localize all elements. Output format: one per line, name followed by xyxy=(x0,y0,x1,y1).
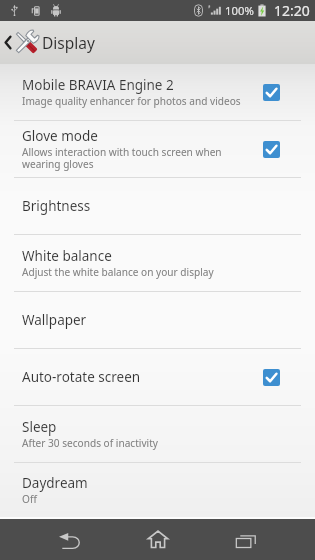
staticText: After 30 seconds of inactivity xyxy=(22,436,158,450)
staticText: Allows interaction with touch screen whe… xyxy=(22,145,247,171)
button[interactable]: Toggle Mobile BRAVIA Engine 2 xyxy=(263,84,280,101)
staticText: Brightness xyxy=(22,197,91,215)
staticText: Image quality enhancer for photos and vi… xyxy=(22,94,241,108)
staticText: Mobile BRAVIA Engine 2 xyxy=(22,76,174,94)
staticText: Wallpaper xyxy=(22,311,87,329)
button[interactable]: Sleep xyxy=(0,406,315,462)
button[interactable]: Mobile BRAVIA Engine 2 xyxy=(0,64,315,120)
staticText: 100% xyxy=(225,3,254,18)
staticText: Adjust the white balance on your display xyxy=(22,265,214,279)
staticText: Daydream xyxy=(22,474,88,492)
button[interactable]: Glove mode xyxy=(0,121,315,177)
button[interactable]: Daydream xyxy=(0,463,315,517)
button[interactable]: Recent apps xyxy=(202,519,290,560)
other: Back xyxy=(4,36,12,49)
staticText: Auto-rotate screen xyxy=(22,368,141,386)
button[interactable]: Home xyxy=(114,519,202,560)
button[interactable]: Toggle Auto-rotate screen xyxy=(263,369,280,386)
staticText: White balance xyxy=(22,247,112,265)
staticText: 12:20 xyxy=(274,1,310,20)
staticText: Sleep xyxy=(22,418,57,436)
button[interactable]: Auto-rotate screen xyxy=(0,349,315,405)
button[interactable]: Toggle Glove mode xyxy=(263,141,280,158)
button[interactable]: Brightness xyxy=(0,178,315,234)
staticText: Display xyxy=(42,32,95,53)
button[interactable]: Wallpaper xyxy=(0,292,315,348)
staticText: Off xyxy=(22,492,37,506)
button[interactable]: Back xyxy=(26,519,114,560)
button[interactable]: Back xyxy=(0,21,315,64)
button[interactable]: White balance xyxy=(0,235,315,291)
staticText: Glove mode xyxy=(22,127,98,145)
